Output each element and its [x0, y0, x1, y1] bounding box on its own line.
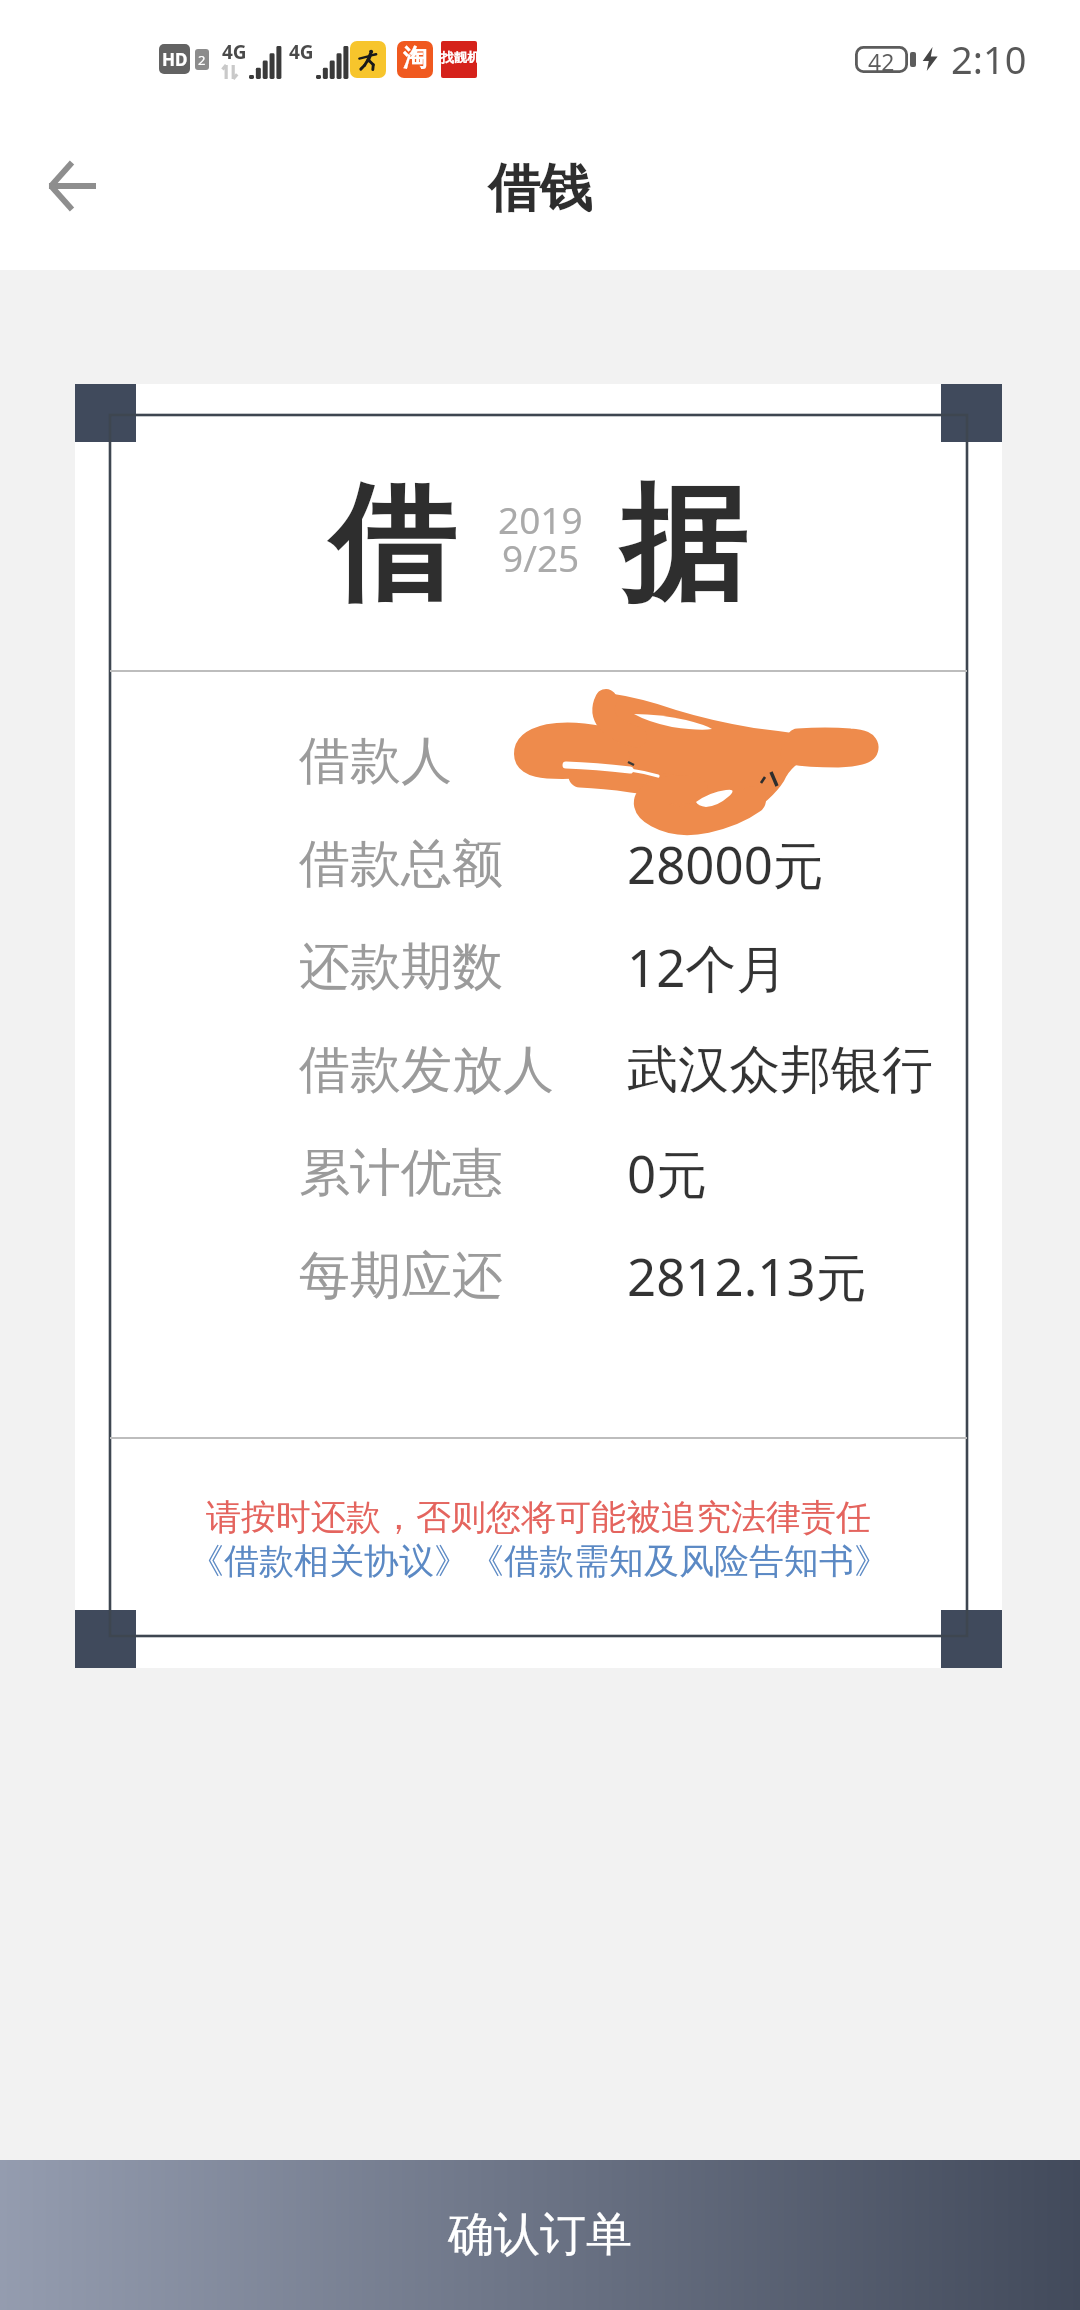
staticText: 4G — [222, 39, 247, 65]
staticText: 12个月 — [627, 932, 788, 1002]
staticText: 2812.13元 — [627, 1241, 867, 1311]
staticText: 累计优惠 — [299, 1141, 503, 1205]
staticText: 借款总额 — [299, 832, 503, 896]
staticText: 据 — [620, 466, 746, 625]
staticText: 找靓机 — [441, 49, 477, 65]
staticText: 《借款相关协议》 — [189, 1539, 469, 1583]
staticText: 4G — [289, 39, 314, 65]
staticText: 28000元 — [627, 829, 824, 899]
staticText: 借款发放人 — [299, 1038, 554, 1102]
staticText: HD — [162, 48, 188, 71]
button[interactable]: 确认订单 — [0, 2160, 1080, 2310]
staticText: 2 — [198, 51, 206, 69]
button[interactable]: 《借款相关协议》 — [189, 1539, 469, 1583]
staticText: 2:10 — [951, 33, 1027, 85]
button[interactable]: 《借款需知及风险告知书》 — [469, 1539, 889, 1583]
staticText: 确认订单 — [448, 2206, 632, 2264]
staticText: 请按时还款，否则您将可能被追究法律责任 — [206, 1495, 871, 1539]
staticText: 9/25 — [502, 532, 580, 582]
staticText: 武汉众邦银行 — [627, 1038, 933, 1102]
staticText: 借款人 — [299, 729, 452, 793]
staticText: 《借款需知及风险告知书》 — [469, 1539, 889, 1583]
staticText: 淘 — [403, 43, 427, 73]
staticText: 借 — [329, 466, 455, 625]
staticText: 借钱 — [488, 156, 592, 222]
button[interactable]: Back — [22, 136, 122, 236]
staticText: 0元 — [627, 1138, 708, 1208]
staticText: 42 — [868, 46, 895, 73]
staticText: 每期应还 — [299, 1244, 503, 1308]
staticText: 还款期数 — [299, 935, 503, 999]
staticText: 2019 — [498, 494, 583, 544]
